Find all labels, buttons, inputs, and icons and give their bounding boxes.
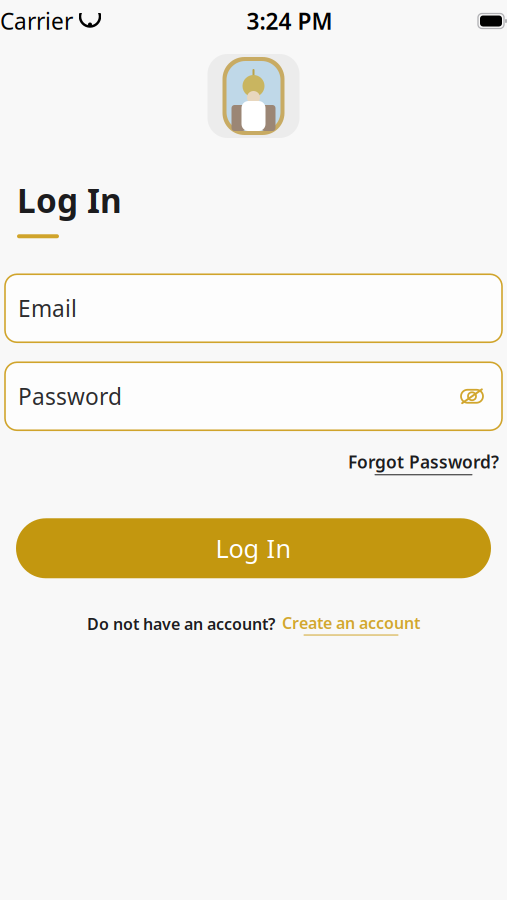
staticText: Log In [215, 531, 291, 565]
button[interactable]: Create an account [282, 612, 420, 635]
staticText: Forgot Password? [348, 450, 499, 473]
staticText: Do not have an account? [87, 613, 275, 634]
button[interactable]: Show password [455, 379, 489, 413]
staticText: Create an account [282, 612, 420, 633]
staticText: 3:24 PM [246, 6, 332, 36]
button[interactable]: Log In [16, 518, 491, 578]
button[interactable]: Forgot Password? [348, 446, 499, 479]
staticText: Log In [17, 178, 122, 222]
staticText: Email [18, 293, 77, 323]
staticText: Carrier [0, 6, 73, 36]
staticText: Password [18, 381, 122, 411]
